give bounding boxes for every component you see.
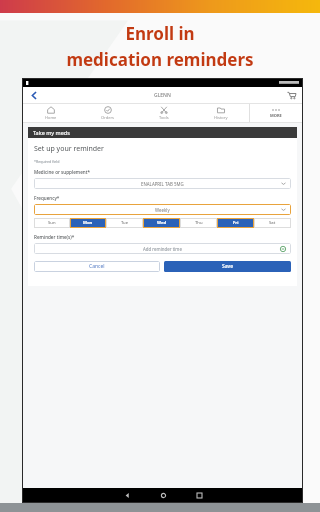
button[interactable]: Fri (217, 218, 254, 228)
staticText: Tools (159, 115, 169, 120)
staticText: Weekly (155, 207, 170, 213)
staticText: Set up your reminder (34, 144, 104, 154)
button[interactable]: Wed (143, 218, 180, 228)
staticText: History (214, 115, 228, 120)
staticText: *Required field (34, 159, 60, 164)
staticText: Fri (233, 220, 239, 226)
staticText: Frequency* (34, 195, 60, 201)
staticText: Sat (269, 220, 276, 226)
staticText: medication reminders (66, 48, 254, 71)
staticText: Save (222, 263, 234, 270)
staticText: Thu (195, 220, 203, 226)
staticText: Take my meds (33, 129, 70, 136)
staticText: Enroll in (125, 22, 195, 45)
staticText: Cancel (89, 263, 105, 270)
button[interactable]: Back (28, 89, 40, 101)
button[interactable]: Sat (254, 218, 291, 228)
staticText: Reminder time(s)* (34, 234, 75, 240)
button[interactable]: Add reminder time (34, 243, 291, 254)
button[interactable]: Cancel (34, 261, 160, 272)
button[interactable]: MORE (250, 104, 302, 122)
staticText: Tue (121, 220, 129, 226)
staticText: MORE (270, 113, 282, 118)
staticText: Sun (48, 220, 56, 226)
button[interactable]: Thu (180, 218, 217, 228)
button[interactable]: Orders (79, 104, 135, 122)
staticText: Medicine or supplement* (34, 169, 90, 175)
staticText: Wed (157, 220, 167, 226)
button[interactable]: Sun (34, 218, 70, 228)
button[interactable]: Save (164, 261, 291, 272)
button[interactable]: ENALAPRIL TAB 5MG (34, 178, 291, 189)
button[interactable]: Home (23, 104, 79, 122)
button[interactable]: Back (116, 488, 138, 502)
button[interactable]: History (192, 104, 249, 122)
staticText: Add reminder time (143, 246, 182, 252)
button[interactable]: Weekly (34, 204, 291, 215)
button[interactable]: Cart (285, 89, 297, 101)
staticText: Mon (83, 220, 93, 226)
staticText: Orders (101, 115, 114, 120)
button[interactable]: Remove reminder time (279, 245, 286, 252)
button[interactable]: Tools (135, 104, 192, 122)
staticText: GLENN (154, 92, 171, 99)
staticText: ENALAPRIL TAB 5MG (141, 181, 184, 187)
button[interactable]: Recents (188, 488, 210, 502)
staticText: Home (45, 115, 57, 120)
button[interactable]: Tue (106, 218, 143, 228)
button[interactable]: Mon (70, 218, 106, 228)
button[interactable]: Home (152, 488, 174, 502)
